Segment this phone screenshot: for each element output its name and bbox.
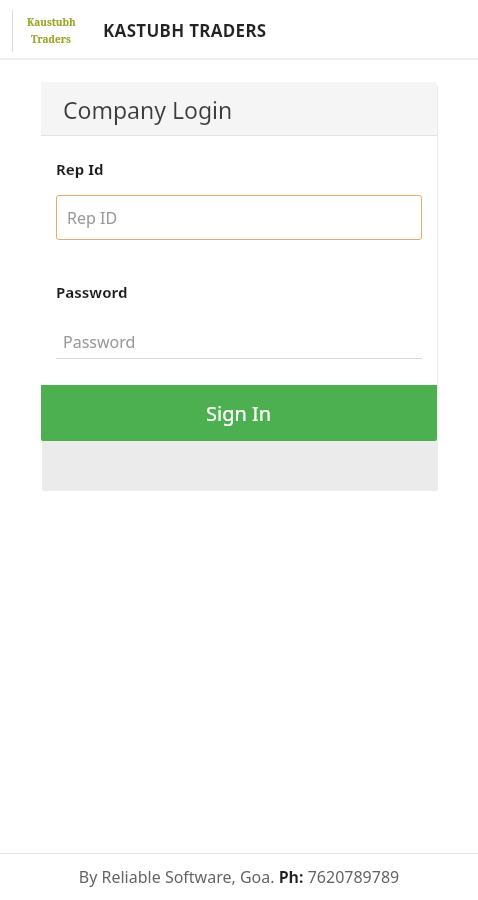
staticText: Traders [31,32,71,46]
staticText: Rep Id [56,159,104,179]
staticText: Password [56,282,128,302]
button[interactable]: Password [56,325,422,359]
staticText: KASTUBH TRADERS [103,19,267,42]
staticText: Sign In [206,400,272,427]
staticText: Rep ID [67,207,118,229]
staticText: Kaustubh [27,15,76,29]
button[interactable]: Rep ID [56,195,422,240]
staticText: Company Login [63,94,233,125]
button[interactable]: Sign In [41,385,437,441]
staticText: Password [63,331,136,353]
staticText: By Reliable Software, Goa. Ph: 762078978… [0,866,478,888]
